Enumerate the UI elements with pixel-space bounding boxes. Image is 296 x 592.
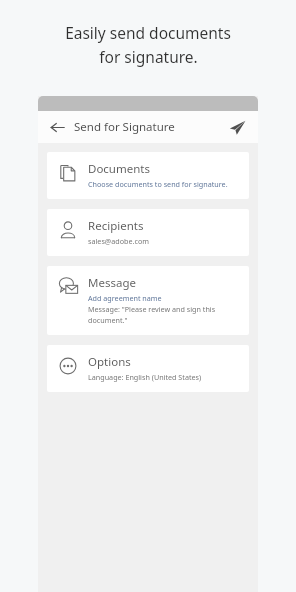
button[interactable]: Message [47,266,249,335]
staticText: Recipients [88,218,144,234]
staticText: Choose documents to send for signature. [88,179,228,189]
staticText: Message: "Please review and sign this [88,304,216,314]
staticText: Add agreement name [88,293,162,303]
staticText: Language: English (United States) [88,372,202,382]
staticText: document." [88,315,128,325]
staticText: Message [88,275,136,291]
button[interactable]: Back [46,116,68,138]
staticText: sales@adobe.com [88,236,150,246]
staticText: Send for Signature [74,119,175,135]
staticText: Documents [88,161,150,177]
staticText: Easily send documents [65,22,231,43]
button[interactable]: Options [47,345,249,392]
button[interactable]: Recipients [47,209,249,256]
staticText: for signature. [99,46,198,67]
button[interactable]: Send [225,115,249,139]
staticText: Options [88,354,131,370]
button[interactable]: Documents [47,152,249,199]
